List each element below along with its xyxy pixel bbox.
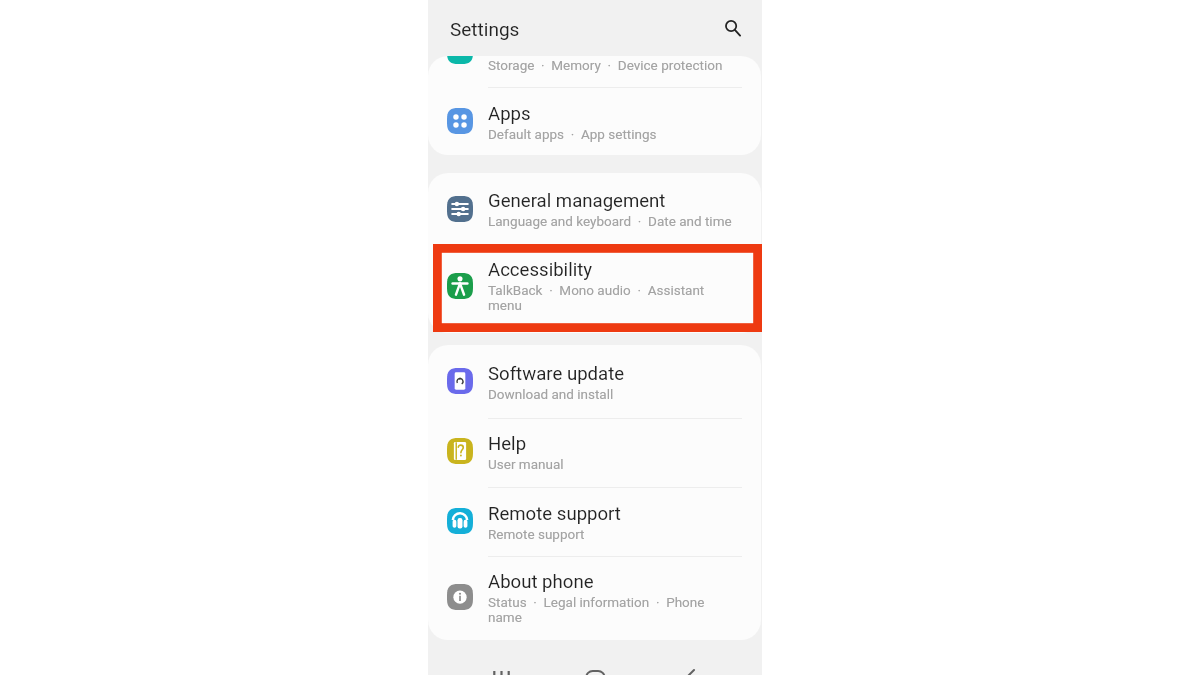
staticText: General management	[488, 190, 666, 212]
button[interactable]: General management	[428, 183, 762, 239]
staticText: Status · Legal information · Phone name	[488, 594, 714, 626]
button[interactable]: Software update	[428, 356, 762, 411]
staticText: About phone	[488, 571, 594, 593]
staticText: Settings	[450, 18, 520, 40]
staticText: Default apps · App settings	[488, 126, 778, 142]
staticText: Download and install	[488, 386, 778, 402]
staticText: TalkBack · Mono audio · Assistant menu	[488, 282, 714, 314]
button[interactable]: Home	[577, 648, 615, 675]
staticText: Software update	[488, 363, 625, 385]
staticText: Language and keyboard · Date and time	[488, 213, 788, 229]
staticText: Remote support	[488, 503, 621, 525]
staticText: Storage · Memory · Device protection	[488, 57, 723, 73]
staticText: Help	[488, 433, 527, 455]
button[interactable]: About phone	[428, 564, 762, 636]
button[interactable]: Remote support	[428, 496, 762, 551]
button[interactable]: Help	[428, 426, 762, 481]
staticText: Apps	[488, 103, 531, 125]
staticText: Remote support	[488, 526, 778, 542]
button[interactable]: Device care	[428, 56, 761, 87]
button[interactable]: Accessibility	[428, 252, 762, 324]
button[interactable]: Back	[671, 648, 709, 675]
staticText: User manual	[488, 456, 778, 472]
button[interactable]: Search	[715, 10, 747, 42]
button[interactable]: Apps	[428, 96, 762, 151]
staticText: Accessibility	[488, 259, 593, 281]
button[interactable]: Recents	[483, 648, 521, 675]
